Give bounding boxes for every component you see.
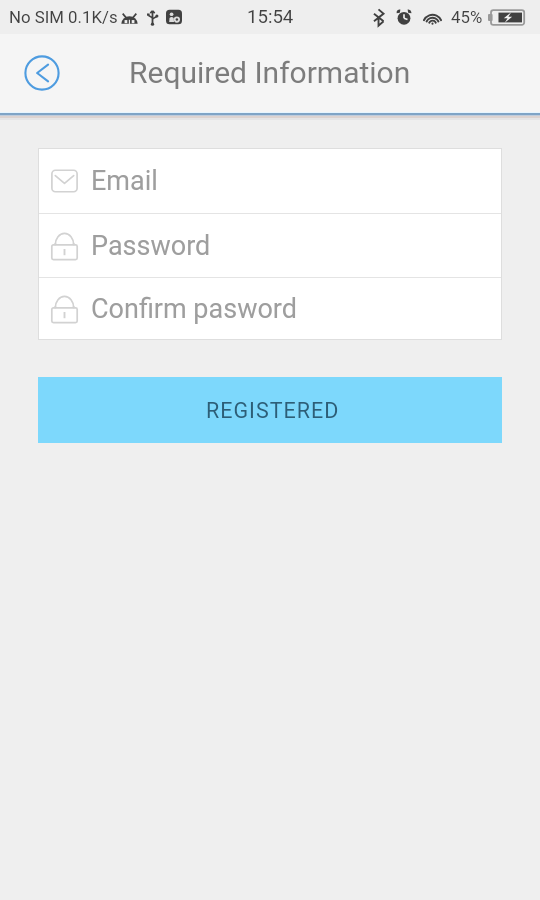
staticText: Email	[91, 165, 158, 197]
staticText: Password	[91, 230, 211, 262]
button[interactable]: Confirm pasword	[38, 278, 502, 340]
staticText: 15:54	[247, 6, 294, 28]
staticText: No SIM 0.1K/s	[9, 7, 118, 27]
button[interactable]: Password	[38, 214, 502, 277]
button[interactable]: Email	[38, 148, 502, 213]
staticText: Confirm pasword	[91, 293, 297, 325]
staticText: 45%	[451, 7, 483, 27]
staticText: Required Information	[129, 55, 411, 90]
button[interactable]: REGISTERED	[38, 377, 502, 443]
staticText: REGISTERED	[206, 398, 340, 423]
button[interactable]: Back	[16, 47, 68, 99]
